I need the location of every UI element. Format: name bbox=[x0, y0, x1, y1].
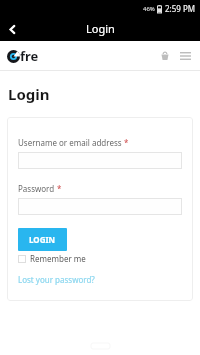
button[interactable]: Cart bbox=[157, 48, 172, 63]
staticText: Remember me bbox=[30, 253, 86, 264]
staticText: Login bbox=[86, 21, 115, 36]
staticText: * bbox=[124, 137, 129, 148]
staticText: * bbox=[57, 183, 62, 194]
staticText: Username or email address bbox=[18, 137, 122, 148]
button[interactable]: Menu bbox=[178, 48, 193, 63]
button[interactable]: Lost your password? bbox=[18, 274, 95, 285]
staticText: Password bbox=[18, 183, 55, 194]
button[interactable]: Remember me bbox=[18, 253, 86, 264]
staticText: 46% bbox=[143, 5, 155, 13]
button[interactable] bbox=[18, 198, 182, 215]
staticText: Login bbox=[8, 84, 50, 104]
staticText: LOGIN bbox=[29, 234, 56, 245]
staticText: 2:59 PM bbox=[165, 3, 196, 14]
staticText: fre bbox=[20, 47, 39, 65]
button[interactable]: Back bbox=[0, 17, 24, 41]
button[interactable]: LOGIN bbox=[18, 228, 67, 251]
button[interactable] bbox=[18, 152, 182, 169]
button[interactable]: fre bbox=[7, 47, 39, 65]
